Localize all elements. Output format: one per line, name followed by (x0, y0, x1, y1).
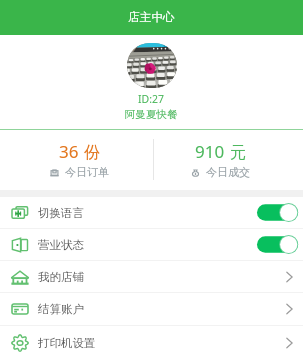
staticText: 阿曼夏快餐 (125, 108, 178, 121)
button[interactable]: 结算账户 (0, 293, 303, 325)
staticText: 结算账户 (38, 302, 84, 316)
staticText: 我的店铺 (38, 270, 84, 284)
button[interactable]: Toggle 切换语言 (257, 203, 298, 222)
staticText: 今日订单 (65, 165, 109, 179)
staticText: 36 (59, 140, 79, 163)
button[interactable]: 910 (146, 129, 295, 190)
button[interactable]: 我的店铺 (0, 261, 303, 292)
button[interactable]: 营业状态 (0, 229, 303, 260)
button[interactable]: 打印机设置 (0, 326, 303, 359)
button[interactable]: 切换语言 (0, 197, 303, 228)
button[interactable]: Profile photo (127, 43, 177, 88)
button[interactable]: Toggle 营业状态 (257, 235, 298, 254)
staticText: 店主中心 (128, 10, 175, 25)
staticText: 910 (195, 140, 225, 163)
staticText: 份 (84, 143, 100, 163)
staticText: 切换语言 (38, 206, 84, 220)
button[interactable]: 36 (3, 129, 156, 190)
staticText: 营业状态 (38, 238, 84, 252)
staticText: 今日成交 (206, 165, 250, 179)
staticText: 元 (230, 143, 246, 163)
staticText: ID:27 (138, 92, 165, 106)
staticText: 打印机设置 (38, 336, 96, 350)
